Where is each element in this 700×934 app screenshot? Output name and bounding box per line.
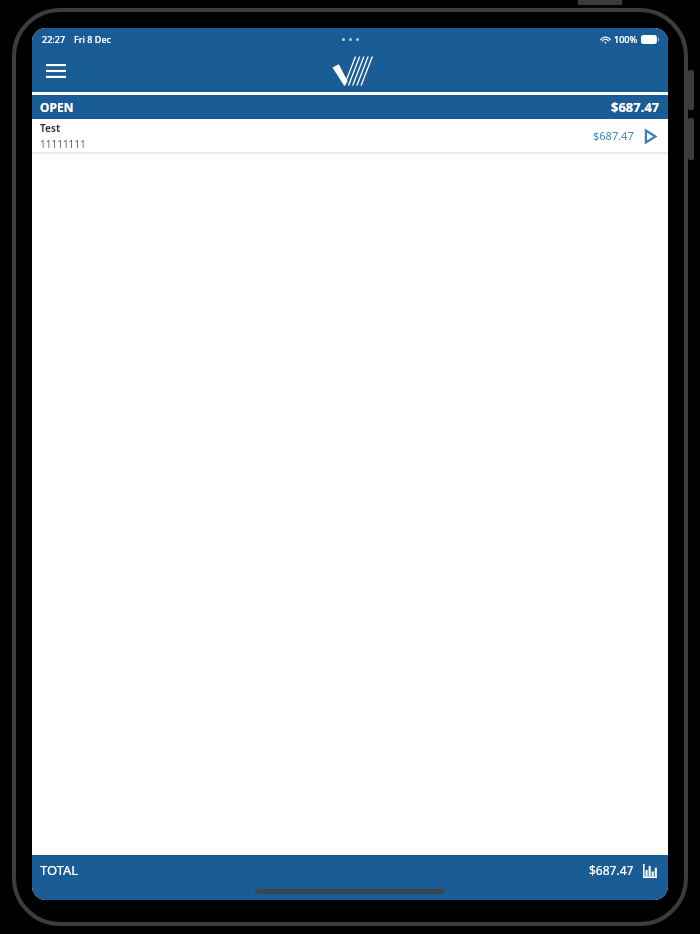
button[interactable]: OPEN bbox=[32, 95, 668, 119]
button[interactable]: Menu bbox=[40, 55, 72, 87]
staticText: $687.47 bbox=[593, 128, 634, 143]
staticText: 22:27 bbox=[42, 33, 66, 45]
button[interactable]: TOTAL bbox=[32, 855, 668, 885]
staticText: OPEN bbox=[40, 99, 74, 115]
staticText: $687.47 bbox=[611, 98, 660, 116]
staticText: TOTAL bbox=[40, 861, 79, 879]
button[interactable]: Play bbox=[642, 128, 658, 144]
button[interactable]: Logo bbox=[330, 54, 370, 88]
staticText: 11111111 bbox=[40, 137, 86, 151]
staticText: 100% bbox=[614, 33, 638, 45]
staticText: Fri 8 Dec bbox=[74, 33, 111, 45]
staticText: Test bbox=[40, 121, 61, 135]
button[interactable]: Test bbox=[32, 119, 668, 152]
staticText: $687.47 bbox=[589, 862, 634, 878]
button[interactable]: Charts bbox=[641, 862, 658, 879]
